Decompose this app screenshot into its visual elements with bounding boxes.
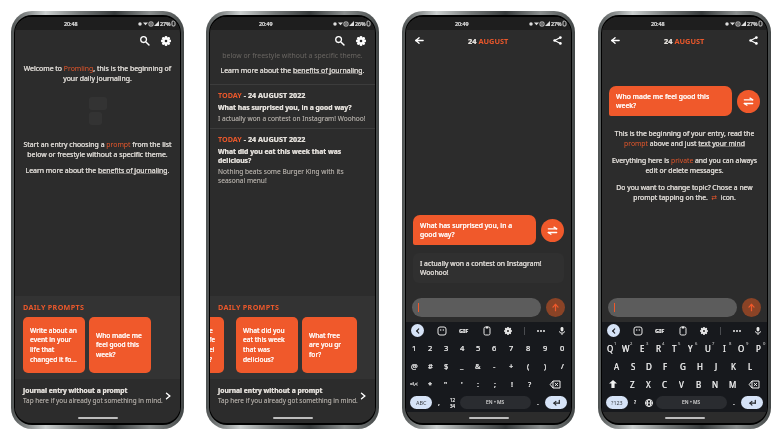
button[interactable]: More: [733, 330, 741, 332]
button[interactable]: EN • MS: [656, 396, 727, 409]
button[interactable]: More: [537, 330, 545, 332]
button[interactable]: Enter: [741, 396, 763, 409]
button[interactable]: F: [657, 357, 674, 375]
button[interactable]: N: [707, 375, 724, 393]
button[interactable]: T: [666, 339, 682, 357]
button[interactable]: 4: [454, 339, 470, 357]
button[interactable]: Who made me feel good this week?: [609, 86, 732, 116]
button[interactable]: ': [454, 375, 470, 393]
button[interactable]: H: [691, 357, 708, 375]
button[interactable]: Voice input: [753, 326, 762, 335]
button[interactable]: EN • MS: [460, 396, 531, 409]
button[interactable]: ABC: [410, 396, 432, 409]
button[interactable]: C: [656, 375, 673, 393]
button[interactable]: ?: [521, 375, 538, 393]
button[interactable]: Change prompt: [737, 90, 760, 113]
button[interactable]: GIF: [459, 327, 469, 335]
button[interactable]: @: [406, 357, 422, 375]
button[interactable]: Send: [546, 298, 565, 317]
button[interactable]: _: [454, 357, 470, 375]
button[interactable]: !: [504, 375, 521, 393]
button[interactable]: ): [537, 357, 554, 375]
button[interactable]: 1: [406, 339, 422, 357]
button[interactable]: 7: [503, 339, 520, 357]
button[interactable]: Settings: [699, 326, 708, 335]
button[interactable]: ?123: [606, 396, 628, 409]
button[interactable]: Back: [412, 33, 427, 48]
button[interactable]: K: [725, 357, 742, 375]
button[interactable]: B: [690, 375, 707, 393]
button[interactable]: -: [486, 357, 503, 375]
button[interactable]: Who made me feel good this week?: [89, 317, 151, 373]
button[interactable]: L: [742, 357, 759, 375]
button[interactable]: Settings: [353, 33, 368, 48]
button[interactable]: S: [625, 357, 641, 375]
button[interactable]: Search: [137, 33, 152, 48]
button[interactable]: &: [470, 357, 486, 375]
button[interactable]: GIF: [655, 327, 665, 335]
button[interactable]: Z: [624, 375, 640, 393]
button[interactable]: W: [618, 339, 634, 357]
button[interactable]: What did you eat this week that was deli…: [236, 317, 298, 373]
button[interactable]: What has surprised you, in a good way?: [413, 215, 536, 245]
button[interactable]: Back: [411, 324, 424, 337]
button[interactable]: Back: [608, 33, 623, 48]
button[interactable]: I: [716, 339, 733, 357]
button[interactable]: 3: [438, 339, 454, 357]
button[interactable]: [608, 298, 737, 317]
button[interactable]: Clipboard: [678, 326, 687, 335]
button[interactable]: Shift: [602, 375, 624, 393]
button[interactable]: Search: [332, 33, 347, 48]
button[interactable]: =\<: [406, 375, 422, 393]
button[interactable]: A: [609, 357, 625, 375]
button[interactable]: ": [438, 375, 454, 393]
button[interactable]: Write about an event in your life that c…: [23, 317, 85, 373]
button[interactable]: Settings: [158, 33, 173, 48]
button[interactable]: Q: [602, 339, 618, 357]
button[interactable]: Emoji: [633, 326, 642, 335]
button[interactable]: G: [674, 357, 691, 375]
button[interactable]: Send: [742, 298, 761, 317]
button[interactable]: Change prompt: [541, 219, 564, 242]
button[interactable]: Voice input: [557, 326, 566, 335]
button[interactable]: Backspace: [741, 375, 767, 393]
button[interactable]: Settings: [503, 326, 512, 335]
button[interactable]: 12: [446, 397, 460, 409]
button[interactable]: Enter: [545, 396, 567, 409]
button[interactable]: 9: [537, 339, 554, 357]
button[interactable]: 6: [486, 339, 503, 357]
button[interactable]: e feel ?: [210, 317, 224, 373]
button[interactable]: Language: [642, 399, 656, 407]
button[interactable]: *: [422, 375, 438, 393]
button[interactable]: 2: [422, 339, 438, 357]
button[interactable]: O: [733, 339, 750, 357]
button[interactable]: 5: [470, 339, 486, 357]
button[interactable]: Backspace: [538, 375, 571, 393]
button[interactable]: +: [503, 357, 520, 375]
button[interactable]: $: [438, 357, 454, 375]
button[interactable]: #: [422, 357, 438, 375]
button[interactable]: Share: [746, 33, 761, 48]
button[interactable]: Y: [682, 339, 699, 357]
button[interactable]: :: [470, 375, 487, 393]
button[interactable]: Emoji: [437, 326, 446, 335]
button[interactable]: Clipboard: [482, 326, 491, 335]
button[interactable]: ;: [487, 375, 504, 393]
button[interactable]: X: [640, 375, 656, 393]
button[interactable]: Back: [607, 324, 620, 337]
button[interactable]: 0: [554, 339, 571, 357]
button[interactable]: Journal entry without a prompt: [15, 379, 180, 412]
button[interactable]: Journal entry without a prompt: [210, 379, 375, 412]
button[interactable]: /: [554, 357, 571, 375]
button[interactable]: E: [634, 339, 650, 357]
button[interactable]: P: [750, 339, 767, 357]
button[interactable]: J: [708, 357, 725, 375]
button[interactable]: U: [699, 339, 716, 357]
button[interactable]: What free are you gr for?: [302, 317, 357, 373]
button[interactable]: 8: [520, 339, 537, 357]
button[interactable]: M: [724, 375, 741, 393]
button[interactable]: Share: [550, 33, 565, 48]
button[interactable]: D: [641, 357, 657, 375]
button[interactable]: R: [650, 339, 666, 357]
button[interactable]: (: [520, 357, 537, 375]
